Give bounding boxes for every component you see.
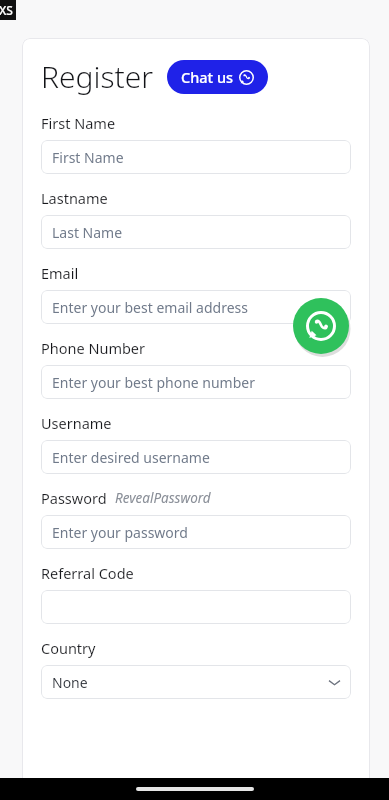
staticText: Password	[41, 488, 107, 508]
staticText: Lastname	[41, 188, 108, 208]
button[interactable]: Chat on WhatsApp	[293, 298, 349, 354]
staticText: Enter your best phone number	[52, 373, 255, 392]
staticText: Phone Number	[41, 338, 146, 358]
button[interactable]: Enter your best phone number	[41, 365, 351, 399]
button[interactable]	[41, 590, 351, 624]
staticText: Enter desired username	[52, 448, 210, 467]
staticText: Enter your password	[52, 523, 188, 542]
button[interactable]: None	[41, 665, 351, 699]
staticText: Country	[41, 638, 96, 658]
staticText: Referral Code	[41, 563, 134, 583]
button[interactable]: Enter your best email address	[41, 290, 351, 324]
button[interactable]: First Name	[41, 140, 351, 174]
staticText: First Name	[41, 113, 116, 133]
staticText: XS	[0, 2, 13, 18]
button[interactable]: Enter your password	[41, 515, 351, 549]
staticText: RevealPassword	[115, 489, 211, 507]
staticText: Chat us	[181, 67, 234, 87]
button[interactable]: Last Name	[41, 215, 351, 249]
button[interactable]: RevealPassword	[115, 489, 211, 507]
staticText: Enter your best email address	[52, 298, 248, 317]
staticText: Last Name	[52, 223, 123, 242]
staticText: Username	[41, 413, 112, 433]
staticText: Email	[41, 263, 79, 283]
staticText: First Name	[52, 148, 124, 167]
button[interactable]: Enter desired username	[41, 440, 351, 474]
staticText: Register	[41, 56, 154, 97]
button[interactable]: Chat us	[167, 60, 268, 94]
staticText: None	[52, 673, 88, 692]
